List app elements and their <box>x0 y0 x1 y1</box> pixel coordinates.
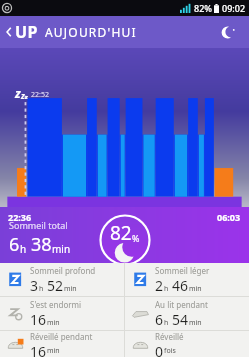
button[interactable]: S'est endormi <box>0 297 124 330</box>
staticText: 46 <box>172 276 189 295</box>
staticText: h <box>164 284 169 294</box>
staticText: min <box>52 242 71 256</box>
staticText: min <box>189 318 202 328</box>
staticText: UP <box>15 21 39 43</box>
staticText: h <box>164 318 169 328</box>
staticText: 82% <box>194 2 212 14</box>
staticText: 16 <box>30 342 47 357</box>
staticText: 82 <box>110 220 132 246</box>
staticText: 2 <box>155 276 164 295</box>
staticText: z <box>21 90 25 101</box>
button[interactable]: Sommeil profond <box>0 263 124 296</box>
staticText: h <box>20 242 27 256</box>
staticText: AUJOURD'HUI <box>45 24 137 40</box>
staticText: h <box>39 284 44 294</box>
staticText: z <box>25 93 28 101</box>
button[interactable]: Réveillé <box>125 331 249 357</box>
staticText: 09:02 <box>222 2 246 14</box>
staticText: 52 <box>47 276 64 295</box>
button[interactable]: Au lit pendant <box>125 297 249 330</box>
button[interactable]: 82 <box>99 214 151 266</box>
staticText: Sommeil léger <box>155 265 210 276</box>
button[interactable]: Back to UP <box>5 21 137 43</box>
staticText: 22:36 <box>8 211 32 223</box>
staticText: 6 <box>9 232 20 257</box>
staticText: 0 <box>155 342 164 357</box>
staticText: 54 <box>172 310 189 329</box>
staticText: 06:03 <box>217 211 241 223</box>
staticText: min <box>189 284 202 294</box>
staticText: min <box>64 284 77 294</box>
staticText: fois <box>164 346 176 356</box>
button[interactable]: Sommeil léger <box>125 263 249 296</box>
button[interactable]: Sleep mode <box>217 21 239 43</box>
staticText: 22:52 <box>31 90 49 100</box>
button[interactable]: Réveillé pendant <box>0 331 124 357</box>
staticText: min <box>47 346 60 356</box>
staticText: 38 <box>31 232 52 257</box>
staticText: 3 <box>30 276 39 295</box>
staticText: Sommeil total <box>9 219 68 231</box>
staticText: S'est endormi <box>30 299 82 310</box>
staticText: Sommeil profond <box>30 265 96 276</box>
staticText: 16 <box>30 310 47 329</box>
staticText: Au lit pendant <box>155 299 208 310</box>
staticText: z <box>15 85 21 101</box>
staticText: Réveillé pendant <box>30 331 93 342</box>
staticText: % <box>132 232 140 244</box>
staticText: 6 <box>155 310 164 329</box>
staticText: min <box>47 318 60 328</box>
staticText: Réveillé <box>155 331 184 342</box>
